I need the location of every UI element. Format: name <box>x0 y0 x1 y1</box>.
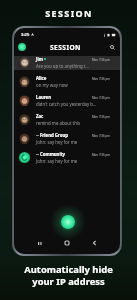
button[interactable]: Home <box>62 238 72 248</box>
staticText: John: say hey for me <box>36 158 78 164</box>
staticText: Community <box>40 151 66 157</box>
staticText: remind me about this <box>36 120 81 126</box>
staticText: Friend Group <box>40 132 68 138</box>
button[interactable]: Zac <box>14 110 120 129</box>
staticText: SESSION <box>50 43 81 52</box>
staticText: Lauren <box>36 94 51 100</box>
button[interactable]: Recent apps <box>35 238 45 248</box>
staticText: 3:25 <box>21 32 30 38</box>
staticText: Mon 7:36 pm <box>92 115 110 119</box>
button[interactable]: New conversation <box>61 215 75 229</box>
button[interactable]: Search <box>108 43 116 51</box>
staticText: Mon 7:36 pm <box>92 153 110 157</box>
button[interactable]: Friend Group <box>14 129 120 148</box>
button[interactable]: Community <box>14 148 120 167</box>
staticText: Jim <box>36 56 43 62</box>
staticText: Mon 7:36 pm <box>92 96 110 100</box>
button[interactable]: Jim <box>14 53 120 72</box>
button[interactable]: Profile <box>18 43 26 51</box>
staticText: John: say hey for me <box>36 139 78 145</box>
staticText: Mon 7:36 pm <box>92 134 110 138</box>
button[interactable]: Lauren <box>14 91 120 110</box>
staticText: on my way now <box>36 82 68 88</box>
button[interactable]: Back <box>89 238 99 248</box>
staticText: Zac <box>36 113 44 119</box>
staticText: SESSION <box>45 7 93 19</box>
staticText: didn't catch you yesterday b... <box>36 101 97 107</box>
button[interactable]: Alice <box>14 72 120 91</box>
staticText: Mon 7:36 pm <box>92 77 110 81</box>
staticText: Alice <box>36 75 47 81</box>
staticText: Mon 7:36 pm <box>92 58 110 62</box>
staticText: Are you up to anything t... <box>36 63 89 69</box>
staticText: Automatically hide your IP address <box>24 263 113 288</box>
